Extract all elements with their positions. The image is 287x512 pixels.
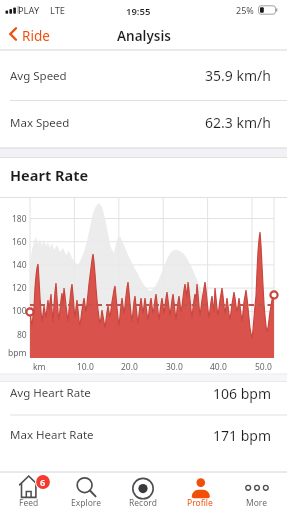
button[interactable]: Ride	[6, 24, 50, 48]
staticText: 19:55	[126, 5, 151, 18]
staticText: LTE	[50, 4, 66, 17]
button[interactable]: Avg Speed	[0, 51, 287, 100]
staticText: bpm	[8, 347, 27, 359]
button[interactable]: Max Heart Rate	[0, 421, 287, 449]
button[interactable]: Profile	[171, 472, 228, 512]
staticText: 120	[12, 282, 27, 294]
staticText: 30.0	[166, 361, 183, 373]
staticText: PLAY	[18, 4, 40, 17]
staticText: 80	[17, 329, 27, 341]
button[interactable]: Max Speed	[0, 101, 287, 144]
staticText: Ride	[22, 27, 50, 45]
staticText: km	[33, 361, 46, 373]
button[interactable]: Feed	[0, 472, 57, 512]
staticText: Avg Speed	[10, 68, 67, 84]
button[interactable]: More	[228, 472, 285, 512]
staticText: Record	[129, 497, 157, 509]
staticText: 106 bpm	[213, 384, 271, 403]
staticText: Feed	[19, 497, 39, 509]
staticText: 140	[12, 259, 27, 271]
staticText: 160	[12, 236, 27, 248]
staticText: 40.0	[210, 361, 227, 373]
staticText: 100	[12, 305, 27, 317]
staticText: 180	[12, 213, 27, 225]
staticText: Explore	[71, 497, 101, 509]
staticText: Profile	[187, 497, 213, 509]
staticText: Max Heart Rate	[10, 427, 94, 443]
staticText: 35.9 km/h	[205, 66, 271, 85]
staticText: 20.0	[121, 361, 138, 373]
staticText: 6	[40, 476, 46, 488]
button[interactable]: Record	[114, 472, 171, 512]
staticText: 50.0	[255, 361, 272, 373]
button[interactable]: Explore	[57, 472, 114, 512]
staticText: Heart Rate	[10, 165, 89, 185]
button[interactable]: Avg Heart Rate	[0, 376, 287, 410]
staticText: 10.0	[77, 361, 94, 373]
staticText: 62.3 km/h	[205, 113, 271, 132]
staticText: 171 bpm	[213, 426, 271, 445]
staticText: Analysis	[117, 27, 171, 45]
staticText: 25%	[236, 4, 254, 16]
staticText: Max Speed	[10, 115, 70, 131]
staticText: More	[246, 497, 267, 509]
staticText: Avg Heart Rate	[10, 385, 91, 401]
